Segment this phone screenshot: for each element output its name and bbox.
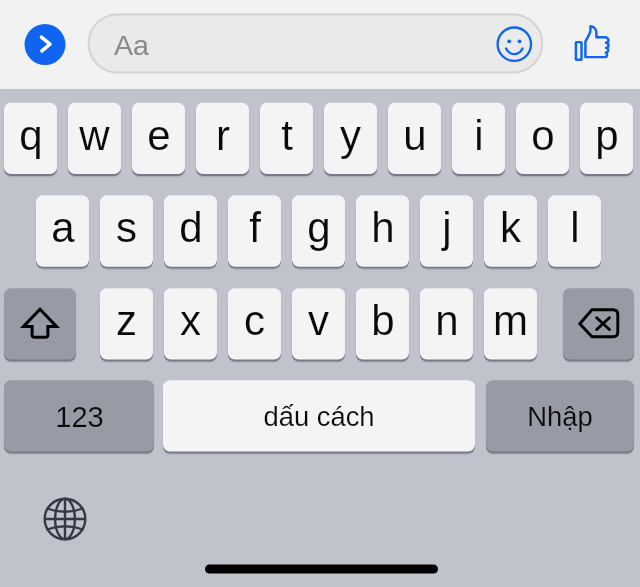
staticText: w [79, 112, 110, 159]
button[interactable]: f [228, 195, 281, 266]
button[interactable]: h [356, 195, 409, 266]
staticText: n [435, 297, 459, 344]
button[interactable]: k [484, 195, 537, 266]
button[interactable]: m [484, 288, 537, 359]
button[interactable]: Change keyboard language [43, 497, 87, 541]
staticText: f [249, 204, 261, 251]
button[interactable]: x [164, 288, 217, 359]
staticText: b [371, 297, 395, 344]
button[interactable]: Open actions [24, 24, 66, 66]
staticText: d [179, 204, 203, 251]
button[interactable]: a [36, 195, 89, 266]
staticText: y [340, 112, 361, 159]
button[interactable]: dấu cách [163, 380, 475, 451]
staticText: s [116, 204, 137, 251]
button[interactable]: o [516, 103, 569, 174]
button[interactable]: v [292, 288, 345, 359]
staticText: x [180, 297, 201, 344]
staticText: g [307, 204, 331, 251]
staticText: m [493, 297, 528, 344]
button[interactable]: r [196, 103, 249, 174]
button[interactable]: 123 [4, 380, 154, 451]
button[interactable]: b [356, 288, 409, 359]
staticText: p [595, 112, 619, 159]
button[interactable]: c [228, 288, 281, 359]
button[interactable]: q [4, 103, 57, 174]
staticText: h [371, 204, 395, 251]
staticText: dấu cách [263, 401, 375, 432]
staticText: j [442, 204, 452, 251]
staticText: Nhập [527, 401, 593, 432]
button[interactable]: d [164, 195, 217, 266]
staticText: t [281, 112, 293, 159]
staticText: r [216, 112, 230, 159]
button[interactable]: s [100, 195, 153, 266]
staticText: v [308, 297, 329, 344]
button[interactable]: j [420, 195, 473, 266]
button[interactable]: n [420, 288, 473, 359]
staticText: l [570, 204, 580, 251]
button[interactable]: Like [574, 24, 611, 62]
staticText: e [147, 112, 171, 159]
button[interactable]: t [260, 103, 313, 174]
button[interactable]: l [548, 195, 601, 266]
staticText: Aa [114, 29, 149, 61]
button[interactable]: Nhập [486, 380, 634, 451]
staticText: o [531, 112, 555, 159]
button[interactable]: e [132, 103, 185, 174]
button[interactable]: y [324, 103, 377, 174]
button[interactable]: w [68, 103, 121, 174]
staticText: u [403, 112, 427, 159]
button[interactable]: p [580, 103, 633, 174]
staticText: a [51, 204, 75, 251]
staticText: z [116, 297, 137, 344]
button[interactable]: z [100, 288, 153, 359]
button[interactable]: Emoji [496, 26, 533, 63]
button[interactable]: g [292, 195, 345, 266]
button[interactable]: Shift [4, 288, 76, 359]
button[interactable]: i [452, 103, 505, 174]
staticText: 123 [55, 401, 104, 433]
staticText: i [474, 112, 484, 159]
button[interactable]: Backspace [563, 288, 634, 359]
button[interactable]: u [388, 103, 441, 174]
staticText: q [19, 112, 43, 159]
staticText: k [500, 204, 521, 251]
button[interactable]: Aa [88, 14, 543, 73]
staticText: c [244, 297, 265, 344]
